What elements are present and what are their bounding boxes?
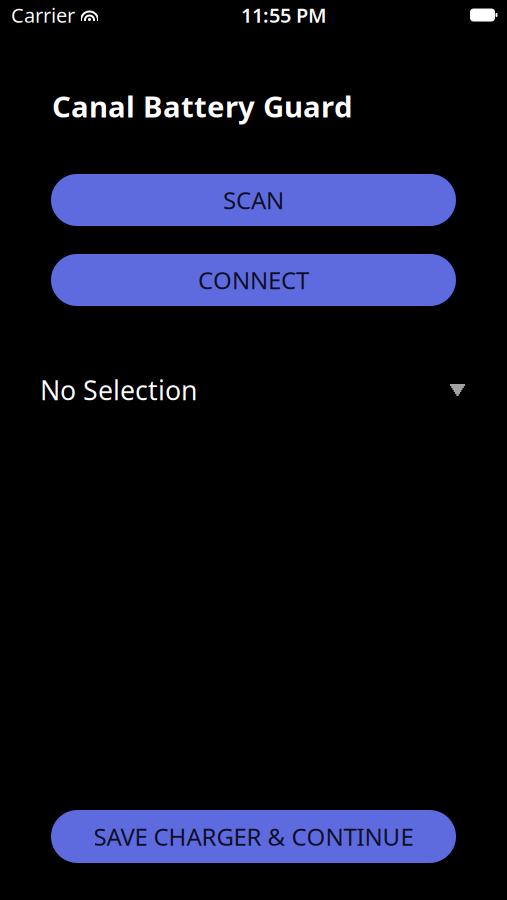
staticText: No Selection <box>40 372 197 408</box>
staticText: SCAN <box>223 184 284 216</box>
button[interactable]: SCAN <box>51 174 456 226</box>
staticText: CONNECT <box>198 264 309 296</box>
staticText: SAVE CHARGER & CONTINUE <box>93 821 413 852</box>
button[interactable]: No Selection <box>0 375 507 405</box>
staticText: 11:55 PM <box>241 2 327 28</box>
button[interactable]: SAVE CHARGER & CONTINUE <box>51 810 456 863</box>
button[interactable]: CONNECT <box>51 254 456 306</box>
staticText: Carrier <box>11 2 75 28</box>
staticText: Canal Battery Guard <box>52 86 353 125</box>
